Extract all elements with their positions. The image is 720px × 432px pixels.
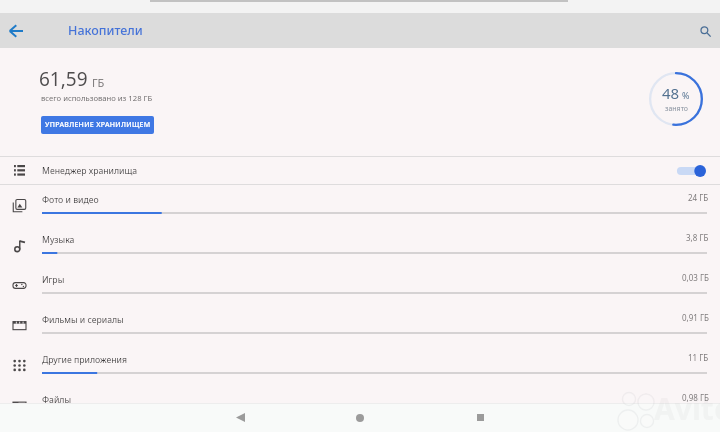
button[interactable]: Музыка	[0, 225, 720, 265]
staticText: УПРАВЛЕНИЕ ХРАНИЛИЩЕМ	[45, 120, 151, 130]
staticText: 61,59	[39, 66, 88, 92]
staticText: %	[682, 89, 690, 101]
button[interactable]: Фото и видео	[0, 185, 720, 225]
staticText: всего использовано из 128 ГБ	[41, 93, 153, 103]
button[interactable]: Фильмы и сериалы	[0, 305, 720, 345]
staticText: Файлы	[42, 394, 72, 406]
staticText: Менеджер хранилища	[42, 165, 138, 177]
staticText: Avito	[654, 388, 720, 429]
staticText: Другие приложения	[42, 354, 127, 366]
staticText: Музыка	[42, 234, 75, 246]
staticText: Фото и видео	[42, 194, 99, 206]
staticText: занято	[665, 104, 688, 114]
button[interactable]: Другие приложения	[0, 345, 720, 385]
staticText: Фильмы и сериалы	[42, 314, 124, 326]
staticText: 11 ГБ	[688, 352, 709, 363]
button[interactable]: Файлы	[0, 385, 720, 425]
button[interactable]: Back	[2, 17, 30, 45]
button[interactable]: Менеджер хранилища	[0, 157, 720, 184]
staticText: 24 ГБ	[688, 192, 709, 203]
button[interactable]: Search	[692, 18, 718, 44]
button[interactable]: Back	[221, 403, 259, 432]
button[interactable]: УПРАВЛЕНИЕ ХРАНИЛИЩЕМ	[41, 116, 154, 134]
staticText: ГБ	[92, 75, 105, 90]
staticText: 0,91 ГБ	[682, 312, 709, 323]
staticText: 3,8 ГБ	[686, 232, 709, 243]
staticText: 0,98 ГБ	[682, 392, 709, 403]
button[interactable]: Игры	[0, 265, 720, 305]
staticText: Игры	[42, 274, 65, 286]
staticText: Накопители	[68, 22, 143, 39]
button[interactable]: Home	[341, 403, 379, 432]
staticText: 0,03 ГБ	[682, 272, 709, 283]
staticText: 48	[662, 83, 680, 103]
button[interactable]: Recents	[461, 403, 499, 432]
